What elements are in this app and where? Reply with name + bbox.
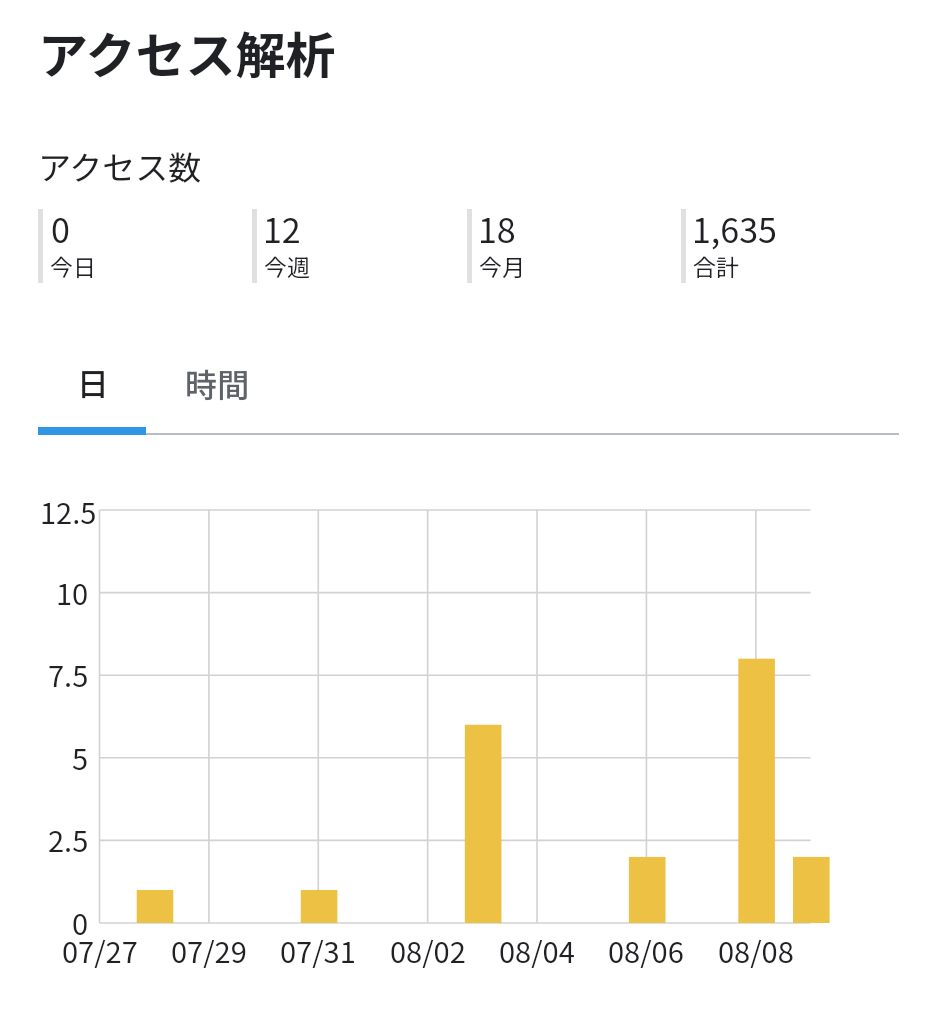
staticText: 今週 bbox=[264, 249, 310, 282]
staticText: 時間 bbox=[185, 360, 250, 406]
staticText: 08/08 bbox=[718, 929, 794, 971]
other: Daily access bar chart bbox=[0, 0, 937, 1024]
staticText: 08/02 bbox=[390, 929, 466, 971]
staticText: 合計 bbox=[693, 249, 739, 282]
staticText: 07/31 bbox=[280, 929, 356, 971]
staticText: 1,635 bbox=[692, 204, 777, 253]
staticText: 今月 bbox=[479, 249, 525, 282]
button[interactable]: 日 bbox=[39, 347, 148, 417]
button[interactable]: 時間 bbox=[147, 348, 287, 418]
button[interactable]: 18 bbox=[467, 208, 667, 284]
staticText: 07/27 bbox=[62, 929, 138, 971]
staticText: 12 bbox=[263, 204, 301, 253]
staticText: 0 bbox=[51, 204, 70, 253]
staticText: 今日 bbox=[50, 249, 96, 282]
staticText: 08/06 bbox=[608, 929, 684, 971]
staticText: 18 bbox=[478, 204, 516, 253]
staticText: 08/04 bbox=[499, 929, 575, 971]
button[interactable]: 1,635 bbox=[681, 208, 881, 284]
staticText: 0 bbox=[72, 901, 89, 943]
staticText: 12.5 bbox=[40, 490, 97, 532]
staticText: アクセス数 bbox=[38, 142, 202, 190]
staticText: 5 bbox=[72, 736, 89, 778]
staticText: 07/29 bbox=[171, 929, 247, 971]
staticText: 10 bbox=[56, 571, 89, 613]
staticText: 7.5 bbox=[48, 653, 89, 695]
button[interactable]: 0 bbox=[38, 208, 238, 284]
staticText: アクセス解析 bbox=[38, 16, 336, 88]
staticText: 2.5 bbox=[48, 818, 89, 860]
button[interactable]: 12 bbox=[252, 208, 452, 284]
staticText: 日 bbox=[77, 359, 110, 405]
